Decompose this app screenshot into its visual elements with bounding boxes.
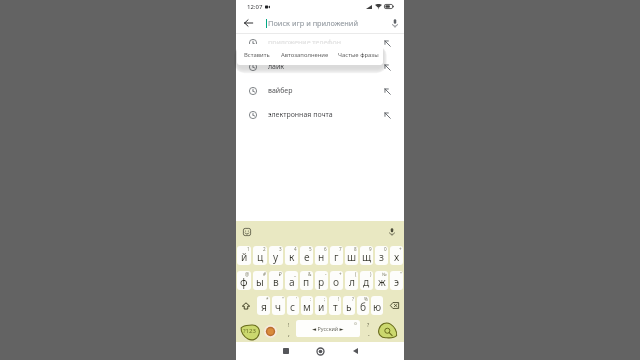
button[interactable]: Period (362, 319, 376, 343)
button[interactable]: ю (371, 296, 383, 315)
button[interactable]: р (315, 271, 328, 290)
staticText: э (394, 275, 400, 289)
button[interactable]: я (257, 296, 270, 315)
button[interactable]: ы (253, 271, 267, 290)
button[interactable]: Emoji picker (262, 319, 279, 343)
staticText: . (368, 329, 370, 338)
button[interactable]: Fill query (380, 79, 404, 103)
button[interactable]: электронная почта (236, 103, 404, 127)
staticText: ц (257, 250, 264, 264)
button[interactable]: Вставить (237, 44, 276, 65)
staticText: 6 (324, 246, 327, 252)
button[interactable]: Voice input (380, 221, 404, 243)
button[interactable]: Search (375, 319, 401, 343)
staticText: ₽ (279, 271, 282, 277)
button[interactable]: в (269, 271, 283, 290)
button[interactable]: л (345, 271, 358, 290)
staticText: я (261, 300, 267, 314)
staticText: и (318, 300, 325, 314)
staticText: ч (275, 300, 282, 314)
staticText: л (349, 275, 355, 289)
staticText: ! (288, 322, 290, 329)
button[interactable]: ш (345, 246, 358, 265)
button[interactable]: ф (237, 271, 251, 290)
button[interactable]: Fill query (380, 55, 404, 79)
staticText: ш (347, 250, 357, 264)
button[interactable]: х (390, 246, 403, 265)
staticText: - (325, 271, 327, 277)
staticText: % (364, 296, 368, 302)
staticText: " (282, 296, 284, 302)
button[interactable]: Emoji (236, 221, 257, 243)
staticText: с (290, 300, 296, 314)
staticText: электронная почта (268, 110, 333, 120)
button[interactable]: Home (312, 342, 329, 360)
button[interactable]: п (300, 271, 313, 290)
staticText: щ (362, 250, 372, 264)
button[interactable]: Backspace (384, 293, 404, 318)
button[interactable]: ч (272, 296, 285, 315)
staticText: ( (355, 271, 357, 277)
staticText: _ (294, 271, 297, 277)
staticText: + (339, 271, 342, 277)
staticText: " (400, 271, 402, 277)
button[interactable]: а (285, 271, 298, 290)
staticText: Автозаполнение (281, 51, 329, 59)
button[interactable]: м (301, 296, 313, 315)
staticText: + (399, 246, 402, 252)
staticText: , (288, 329, 290, 338)
button[interactable]: Recent apps (277, 342, 294, 360)
button[interactable]: з (375, 246, 388, 265)
staticText: Поиск игр и приложений (268, 18, 359, 28)
button[interactable]: е (300, 246, 313, 265)
button[interactable]: Fill query (380, 31, 404, 55)
button[interactable]: ◄ Русский ► (296, 320, 360, 337)
staticText: 7 (339, 246, 342, 252)
staticText: ?123 (243, 327, 256, 335)
button[interactable]: й (237, 246, 251, 265)
staticText: ы (256, 275, 264, 289)
staticText: к (289, 250, 295, 264)
button[interactable]: приложение телефон (236, 31, 404, 55)
button[interactable]: Shift (236, 293, 256, 318)
staticText: ф (240, 275, 248, 289)
staticText: ? (352, 296, 354, 302)
button[interactable]: ж (375, 271, 388, 290)
staticText: м (303, 300, 311, 314)
button[interactable]: Частые фразы (334, 44, 383, 65)
button[interactable]: Автозаполнение (276, 44, 334, 65)
staticText: 4 (294, 246, 297, 252)
button[interactable]: Comma (281, 319, 295, 343)
button[interactable]: т (329, 296, 341, 315)
staticText: приложение телефон (268, 38, 341, 48)
button[interactable]: б (357, 296, 369, 315)
button[interactable]: н (315, 246, 328, 265)
staticText: 9 (369, 246, 372, 252)
staticText: ю (373, 300, 382, 314)
button[interactable]: Back (347, 342, 364, 360)
button[interactable]: и (315, 296, 327, 315)
button[interactable]: у (269, 246, 283, 265)
button[interactable]: лайк (236, 55, 404, 79)
button[interactable]: Symbols (237, 319, 263, 343)
button[interactable]: Fill query (380, 103, 404, 127)
button[interactable]: щ (360, 246, 373, 265)
button[interactable]: д (360, 271, 373, 290)
button[interactable]: ц (253, 246, 267, 265)
staticText: 0 (384, 246, 387, 252)
staticText: Вставить (244, 51, 270, 59)
button[interactable]: г (330, 246, 343, 265)
button[interactable]: э (390, 271, 403, 290)
button[interactable]: вайбер (236, 79, 404, 103)
staticText: # (263, 271, 266, 277)
button[interactable]: Back (236, 13, 261, 33)
button[interactable]: о (330, 271, 343, 290)
button[interactable]: ь (343, 296, 355, 315)
button[interactable]: с (287, 296, 299, 315)
staticText: ) (370, 271, 372, 277)
button[interactable]: к (285, 246, 298, 265)
staticText: ' (296, 296, 298, 302)
staticText: й (241, 250, 248, 264)
staticText: х (394, 250, 400, 264)
button[interactable]: Voice search (386, 13, 404, 33)
